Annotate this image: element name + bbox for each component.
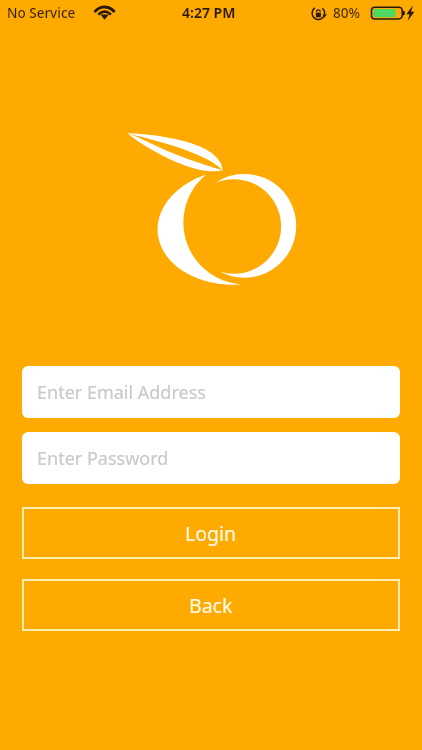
staticText: 80%: [333, 4, 360, 22]
button[interactable]: Enter Email Address: [22, 366, 400, 418]
staticText: Login: [185, 520, 237, 547]
staticText: No Service: [7, 4, 76, 22]
button[interactable]: Login: [22, 507, 400, 559]
staticText: Back: [189, 592, 233, 619]
staticText: Enter Password: [37, 446, 169, 471]
staticText: 4:27 PM: [182, 3, 236, 22]
staticText: Enter Email Address: [37, 380, 206, 405]
button[interactable]: Back: [22, 579, 400, 631]
button[interactable]: Enter Password: [22, 432, 400, 484]
